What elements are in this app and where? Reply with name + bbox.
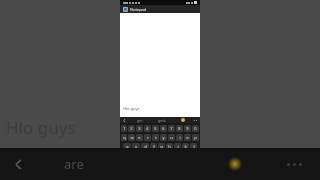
button[interactable]: 8 — [176, 125, 183, 132]
staticText: k — [184, 144, 187, 149]
staticText: j — [177, 144, 179, 149]
button[interactable]: w — [128, 134, 135, 141]
button[interactable]: i — [176, 134, 183, 141]
staticText: 0 — [194, 126, 197, 131]
staticText: 4 — [146, 126, 149, 131]
button[interactable]: h — [166, 143, 173, 150]
button[interactable]: t — [152, 134, 159, 141]
staticText: p — [194, 135, 197, 140]
staticText: g — [160, 144, 163, 149]
button[interactable]: a — [123, 143, 131, 150]
staticText: w — [130, 135, 134, 140]
button[interactable]: p — [192, 134, 199, 141]
button[interactable]: 9 — [184, 125, 191, 132]
staticText: 5 — [154, 126, 157, 131]
staticText: gmb — [158, 118, 166, 123]
button[interactable]: d — [141, 143, 149, 150]
button[interactable]: 7 — [168, 125, 175, 132]
staticText: 3 — [138, 126, 141, 131]
staticText: o — [186, 135, 189, 140]
button[interactable]: g — [158, 143, 165, 150]
button[interactable]: l — [190, 143, 197, 150]
button[interactable]: Expand toolbar — [122, 118, 127, 123]
staticText: Hlo guys — [6, 116, 76, 139]
button[interactable]: 5 — [152, 125, 159, 132]
button[interactable]: s — [132, 143, 140, 150]
button[interactable]: f — [150, 143, 157, 150]
staticText: Hlo guys — [123, 106, 140, 111]
button[interactable]: Sticker — [181, 118, 185, 122]
staticText: gm — [137, 118, 143, 123]
button[interactable]: More options — [194, 118, 198, 122]
staticText: f — [153, 144, 155, 149]
button[interactable]: 1 — [121, 125, 127, 132]
staticText: l — [193, 144, 195, 149]
button[interactable]: j — [174, 143, 181, 150]
staticText: a — [126, 144, 129, 149]
button[interactable]: q — [121, 134, 127, 141]
staticText: 8 — [178, 126, 181, 131]
staticText: i — [179, 135, 181, 140]
button[interactable]: Notepad — [120, 5, 200, 13]
staticText: 7 — [170, 126, 173, 131]
button[interactable]: e — [136, 134, 143, 141]
staticText: y — [162, 135, 165, 140]
staticText: 6 — [162, 126, 165, 131]
staticText: h — [168, 144, 171, 149]
button[interactable]: r — [144, 134, 151, 141]
button[interactable]: y — [160, 134, 167, 141]
staticText: Notepad — [130, 7, 147, 12]
button[interactable]: 0 — [192, 125, 199, 132]
staticText: t — [155, 135, 157, 140]
button[interactable]: 2 — [128, 125, 135, 132]
staticText: s — [135, 144, 137, 149]
button[interactable]: k — [182, 143, 189, 150]
staticText: r — [147, 135, 149, 140]
staticText: 2 — [130, 126, 133, 131]
staticText: 1 — [123, 126, 126, 131]
button[interactable]: 6 — [160, 125, 167, 132]
staticText: u — [170, 135, 173, 140]
button[interactable]: 4 — [144, 125, 151, 132]
button[interactable]: More options — [287, 163, 302, 166]
staticText: are — [64, 155, 84, 173]
button[interactable]: Hlo guys — [120, 13, 200, 117]
staticText: e — [138, 135, 141, 140]
button[interactable]: Channel avatar — [228, 157, 242, 171]
button[interactable]: u — [168, 134, 175, 141]
staticText: q — [123, 135, 126, 140]
staticText: d — [144, 144, 147, 149]
button[interactable]: o — [184, 134, 191, 141]
button[interactable]: 3 — [136, 125, 143, 132]
button[interactable]: Back — [10, 156, 26, 172]
